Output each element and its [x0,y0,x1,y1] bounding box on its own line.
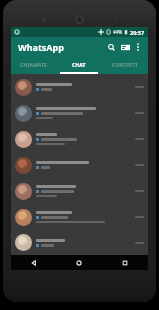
button[interactable] [11,178,148,204]
button[interactable]: CONTATTI [102,57,148,72]
staticText: 20:57 [130,29,145,36]
button[interactable]: Back [11,255,56,270]
button[interactable]: More options [132,41,144,53]
button[interactable] [11,230,148,255]
button[interactable]: Recent apps [102,255,148,270]
button[interactable]: Search [104,40,118,54]
staticText: 44% [113,29,122,35]
button[interactable] [11,74,148,100]
button[interactable]: Home [56,255,102,270]
staticText: CHIAMATE [20,61,47,68]
button[interactable] [11,204,148,230]
button[interactable] [11,100,148,126]
staticText: CONTATTI [112,61,138,68]
button[interactable]: CHAT [56,57,102,72]
staticText: CHAT [72,61,86,68]
staticText: WhatsApp [18,41,64,53]
button[interactable] [11,152,148,178]
button[interactable]: New chat [118,40,132,54]
button[interactable]: CHIAMATE [11,57,56,72]
button[interactable] [11,126,148,152]
